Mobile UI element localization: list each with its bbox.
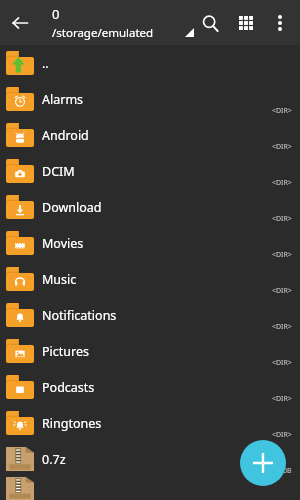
staticText: Android <box>42 127 89 144</box>
staticText: <DIR> <box>272 322 292 332</box>
button[interactable]: Notifications <box>0 297 300 333</box>
staticText: <DIR> <box>272 286 292 296</box>
button[interactable]: DCIM <box>0 153 300 189</box>
button[interactable] <box>0 477 300 500</box>
staticText: <DIR> <box>272 394 292 404</box>
staticText: <DIR> <box>272 142 292 152</box>
staticText: <DIR> <box>272 250 292 260</box>
button[interactable]: 0.7z <box>0 441 300 477</box>
staticText: Music <box>42 271 77 288</box>
staticText: 0.7z <box>42 451 66 468</box>
staticText: DCIM <box>42 163 75 180</box>
button[interactable]: Music <box>0 261 300 297</box>
button[interactable]: Back <box>0 3 40 43</box>
staticText: <DIR> <box>272 214 292 224</box>
staticText: <DIR> <box>272 106 292 116</box>
button[interactable]: Android <box>0 117 300 153</box>
button[interactable]: Alarms <box>0 81 300 117</box>
button[interactable]: Podcasts <box>0 369 300 405</box>
button[interactable]: More options <box>264 7 296 39</box>
staticText: <DIR> <box>272 178 292 188</box>
button[interactable]: Ringtones <box>0 405 300 441</box>
staticText: 275.00B <box>265 466 292 476</box>
staticText: <DIR> <box>272 358 292 368</box>
staticText: Ringtones <box>42 415 102 432</box>
staticText: .. <box>42 55 49 72</box>
button[interactable]: Search <box>192 5 228 41</box>
button[interactable]: Pictures <box>0 333 300 369</box>
staticText: Notifications <box>42 307 117 324</box>
staticText: Movies <box>42 235 84 252</box>
staticText: 0 <box>52 5 60 23</box>
staticText: <DIR> <box>272 430 292 440</box>
button[interactable]: Grid view <box>228 5 264 41</box>
staticText: Pictures <box>42 343 89 360</box>
button[interactable]: Download <box>0 189 300 225</box>
button[interactable]: .. <box>0 45 300 81</box>
button[interactable]: Movies <box>0 225 300 261</box>
staticText: Podcasts <box>42 379 95 396</box>
staticText: /storage/emulated <box>52 25 154 41</box>
button[interactable]: Add <box>240 440 286 486</box>
staticText: Download <box>42 199 102 216</box>
staticText: Alarms <box>42 91 84 108</box>
